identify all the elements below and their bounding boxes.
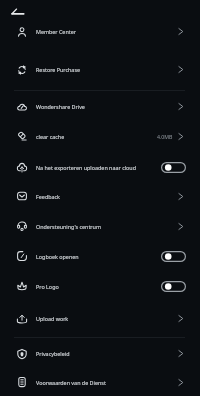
button[interactable]: Toggle [161, 162, 186, 173]
button[interactable]: Ondersteuning's centrum [0, 211, 200, 241]
button[interactable]: Wondershare Drive [0, 91, 200, 122]
button[interactable]: Pro Logo [0, 271, 200, 301]
button[interactable]: Restore Purchase [0, 51, 200, 88]
staticText: Ondersteuning's centrum [36, 223, 166, 230]
staticText: Upload work [36, 315, 166, 322]
button[interactable]: Toggle [161, 251, 186, 262]
staticText: clear cache [36, 133, 166, 140]
staticText: Voorwaarden van de Dienst [36, 379, 166, 386]
button[interactable]: clear cache [0, 121, 200, 151]
button[interactable]: Logboek openen [0, 241, 200, 271]
staticText: Member Center [36, 28, 166, 35]
staticText: Pro Logo [36, 283, 166, 290]
staticText: Feedback [36, 193, 166, 200]
button[interactable]: Member Center [0, 13, 200, 50]
staticText: Wondershare Drive [36, 103, 166, 110]
button[interactable]: Privacybeleid [0, 338, 200, 369]
staticText: Restore Purchase [36, 66, 166, 73]
button[interactable]: Feedback [0, 181, 200, 211]
staticText: Logboek openen [36, 253, 166, 260]
button[interactable]: Back [5, 0, 29, 24]
button[interactable]: Upload work [0, 303, 200, 334]
button[interactable]: Toggle [161, 281, 186, 292]
staticText: Privacybeleid [36, 350, 166, 357]
staticText: 4.0MB [157, 133, 173, 140]
button[interactable]: Na het exporteren uploaden naar cloud [0, 152, 200, 182]
button[interactable]: Voorwaarden van de Dienst [0, 368, 200, 396]
staticText: Na het exporteren uploaden naar cloud [36, 164, 166, 171]
